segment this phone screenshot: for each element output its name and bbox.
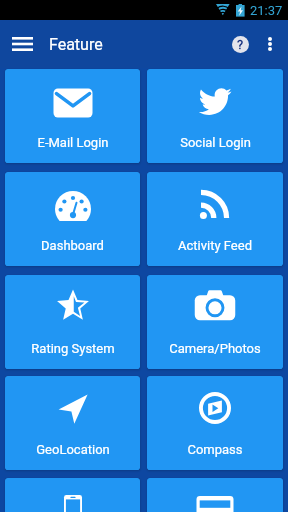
button[interactable]: Compass	[147, 376, 283, 470]
staticText: Activity Feed	[178, 238, 252, 253]
button[interactable]: Cards	[147, 478, 283, 512]
button[interactable]: Menu	[5, 27, 39, 61]
staticText: 21:37	[250, 3, 283, 18]
button[interactable]: Camera/Photos	[147, 275, 283, 369]
other: Wi-Fi	[216, 4, 230, 16]
button[interactable]: Mobile	[5, 478, 140, 512]
staticText: Rating System	[31, 341, 115, 356]
button[interactable]: Rating System	[5, 275, 140, 369]
staticText: Feature	[49, 35, 103, 54]
staticText: Compass	[187, 442, 243, 457]
button[interactable]: Activity Feed	[147, 172, 283, 266]
staticText: ?	[237, 37, 244, 52]
button[interactable]: Dashboard	[5, 172, 140, 266]
staticText: Dashboard	[41, 238, 104, 253]
staticText: GeoLocation	[36, 442, 110, 457]
staticText: Social Login	[180, 135, 251, 150]
staticText: Camera/Photos	[169, 341, 261, 356]
button[interactable]: GeoLocation	[5, 376, 140, 470]
button[interactable]: Help	[223, 27, 257, 61]
other: Battery charging	[236, 4, 245, 17]
button[interactable]: More options	[255, 29, 285, 59]
staticText: E-Mail Login	[37, 135, 109, 150]
button[interactable]: Social Login	[147, 69, 283, 163]
button[interactable]: E-Mail Login	[5, 69, 140, 163]
